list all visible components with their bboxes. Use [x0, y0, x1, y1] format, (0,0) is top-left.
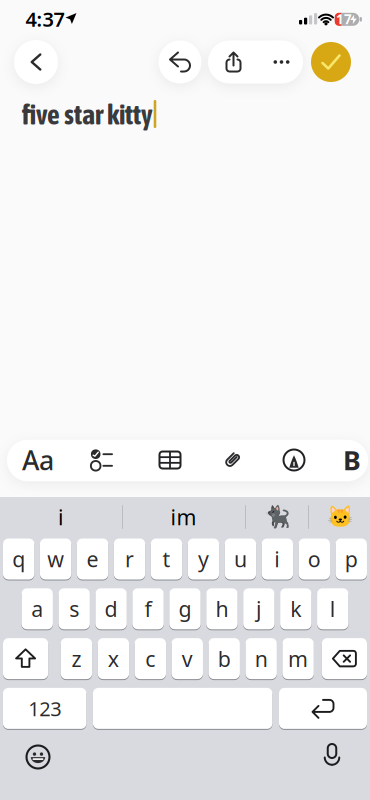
button[interactable] [311, 42, 351, 82]
staticText: n [255, 644, 268, 673]
button[interactable]: e [77, 538, 108, 580]
button[interactable]: k [280, 588, 311, 630]
staticText: i [274, 545, 280, 573]
button[interactable]: n [245, 638, 277, 680]
button[interactable] [79, 439, 125, 480]
staticText: l [330, 595, 336, 623]
button[interactable] [3, 638, 48, 680]
staticText: a [31, 595, 43, 623]
button[interactable]: w [40, 538, 71, 580]
staticText: t [162, 545, 170, 573]
button[interactable] [322, 638, 367, 680]
staticText: g [178, 595, 191, 623]
staticText: five star kitty [22, 98, 153, 131]
staticText: k [290, 595, 301, 623]
button[interactable] [211, 40, 255, 83]
staticText: d [105, 595, 118, 623]
button[interactable]: l [317, 588, 348, 630]
staticText: o [308, 545, 321, 573]
staticText: f [145, 595, 152, 623]
staticText: c [145, 644, 155, 673]
button[interactable]: s [58, 588, 90, 630]
staticText: B [343, 442, 361, 478]
staticText: q [12, 545, 25, 573]
button[interactable] [211, 439, 257, 480]
button[interactable] [93, 687, 272, 729]
staticText: j [256, 595, 262, 623]
button[interactable]: a [21, 588, 53, 630]
staticText: im [170, 503, 196, 531]
button[interactable]: m [282, 638, 314, 680]
staticText: w [47, 545, 64, 573]
staticText: 🐱 [326, 505, 353, 529]
button[interactable]: t [151, 538, 182, 580]
button[interactable] [14, 40, 58, 84]
button[interactable]: 🐈‍⬛ [248, 498, 306, 536]
staticText: r [125, 545, 134, 573]
staticText: y [198, 545, 209, 573]
button[interactable]: 123 [3, 687, 86, 729]
button[interactable]: f [132, 588, 164, 630]
button[interactable]: B [332, 439, 370, 480]
staticText: x [108, 644, 119, 673]
button[interactable] [271, 439, 317, 480]
staticText: 123 [28, 695, 61, 722]
button[interactable] [18, 737, 58, 777]
button[interactable]: q [3, 538, 34, 580]
staticText: 17 [336, 10, 352, 28]
button[interactable]: d [95, 588, 127, 630]
button[interactable]: p [335, 538, 367, 580]
button[interactable]: c [135, 638, 166, 680]
button[interactable] [312, 736, 352, 776]
staticText: m [288, 644, 308, 673]
staticText: v [182, 644, 193, 673]
button[interactable] [158, 40, 201, 83]
button[interactable]: im [123, 498, 243, 536]
staticText: e [87, 545, 99, 573]
staticText: h [215, 595, 228, 623]
staticText: p [345, 545, 358, 573]
button[interactable] [147, 439, 193, 480]
button[interactable]: y [188, 538, 219, 580]
staticText: z [71, 644, 81, 673]
button[interactable]: i [262, 538, 293, 580]
button[interactable]: h [206, 588, 238, 630]
button[interactable]: r [114, 538, 145, 580]
staticText: b [218, 644, 231, 673]
staticText: u [234, 545, 247, 573]
button[interactable]: b [208, 638, 240, 680]
button[interactable] [279, 687, 367, 729]
staticText: 🐈‍⬛ [263, 505, 290, 529]
button[interactable]: z [61, 638, 92, 680]
button[interactable]: x [98, 638, 129, 680]
button[interactable]: j [243, 588, 275, 630]
button[interactable]: u [225, 538, 256, 580]
button[interactable]: g [169, 588, 201, 630]
button[interactable]: i [1, 498, 121, 536]
staticText: 4:37 [25, 6, 64, 32]
staticText: i [58, 503, 64, 531]
button[interactable]: o [299, 538, 330, 580]
button[interactable]: Aa [16, 439, 60, 480]
button[interactable] [259, 40, 303, 83]
staticText: s [69, 595, 79, 623]
button[interactable]: v [171, 638, 203, 680]
button[interactable]: 🐱 [312, 498, 368, 536]
staticText: Aa [22, 442, 54, 478]
